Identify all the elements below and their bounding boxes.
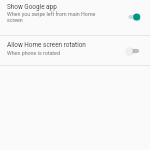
button[interactable]: Allow Home screen rotation	[0, 36, 150, 65]
button[interactable]: Switch on	[123, 5, 147, 29]
staticText: When phone is rotated	[7, 50, 60, 56]
button[interactable]: Show Google app	[0, 0, 150, 35]
button[interactable]: Switch off	[123, 39, 147, 63]
staticText: When you swipe left from main Home scree…	[7, 11, 109, 24]
staticText: Show Google app	[7, 3, 57, 11]
staticText: Allow Home screen rotation	[7, 41, 86, 49]
